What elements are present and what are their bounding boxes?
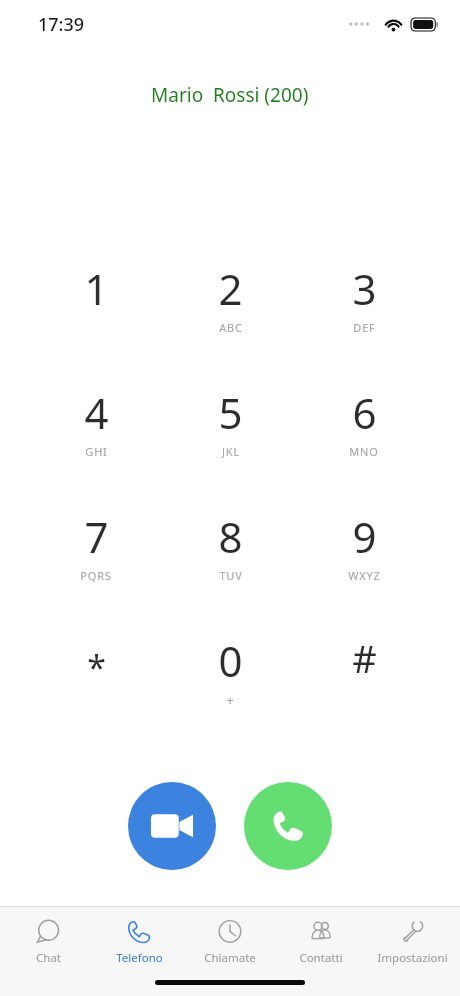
button[interactable]: 3: [297, 258, 431, 382]
button[interactable]: 8: [163, 506, 297, 630]
button[interactable]: 7: [29, 506, 163, 630]
button[interactable]: Chat: [5, 913, 91, 966]
staticText: 6: [352, 384, 377, 441]
staticText: GHI: [85, 444, 108, 459]
button[interactable]: 6: [297, 382, 431, 506]
staticText: MNO: [349, 444, 379, 459]
staticText: Telefono: [116, 950, 163, 966]
staticText: WXYZ: [348, 568, 381, 583]
button[interactable]: 2: [163, 258, 297, 382]
staticText: 4: [84, 384, 109, 441]
staticText: #: [352, 632, 377, 684]
staticText: 1: [84, 260, 109, 317]
staticText: Contatti: [299, 950, 343, 966]
staticText: Chat: [36, 950, 61, 966]
staticText: DEF: [353, 320, 376, 335]
staticText: +: [226, 691, 235, 709]
staticText: ABC: [219, 320, 243, 335]
button[interactable]: #: [297, 630, 431, 754]
button[interactable]: *: [29, 630, 163, 754]
staticText: *: [87, 644, 106, 690]
staticText: PQRS: [80, 568, 112, 583]
staticText: 7: [84, 508, 109, 565]
button[interactable]: Chiamate: [187, 913, 273, 966]
staticText: Impostazioni: [377, 950, 448, 966]
staticText: 0: [218, 632, 243, 689]
staticText: 3: [352, 260, 377, 317]
button[interactable]: Call: [244, 782, 332, 870]
staticText: 2: [218, 260, 243, 317]
staticText: TUV: [219, 568, 243, 583]
button[interactable]: 5: [163, 382, 297, 506]
staticText: JKL: [222, 444, 240, 459]
staticText: Mario Rossi (200): [151, 82, 309, 108]
button[interactable]: 4: [29, 382, 163, 506]
button[interactable]: 1: [29, 258, 163, 382]
button[interactable]: Impostazioni: [369, 913, 455, 966]
button[interactable]: Contatti: [278, 913, 364, 966]
button[interactable]: 0: [163, 630, 297, 754]
staticText: Chiamate: [204, 950, 256, 966]
button[interactable]: Telefono: [96, 913, 182, 966]
staticText: 5: [218, 384, 243, 441]
staticText: 8: [218, 508, 243, 565]
staticText: 9: [352, 508, 377, 565]
button[interactable]: Video call: [128, 782, 216, 870]
button[interactable]: 9: [297, 506, 431, 630]
staticText: 17:39: [38, 12, 85, 37]
